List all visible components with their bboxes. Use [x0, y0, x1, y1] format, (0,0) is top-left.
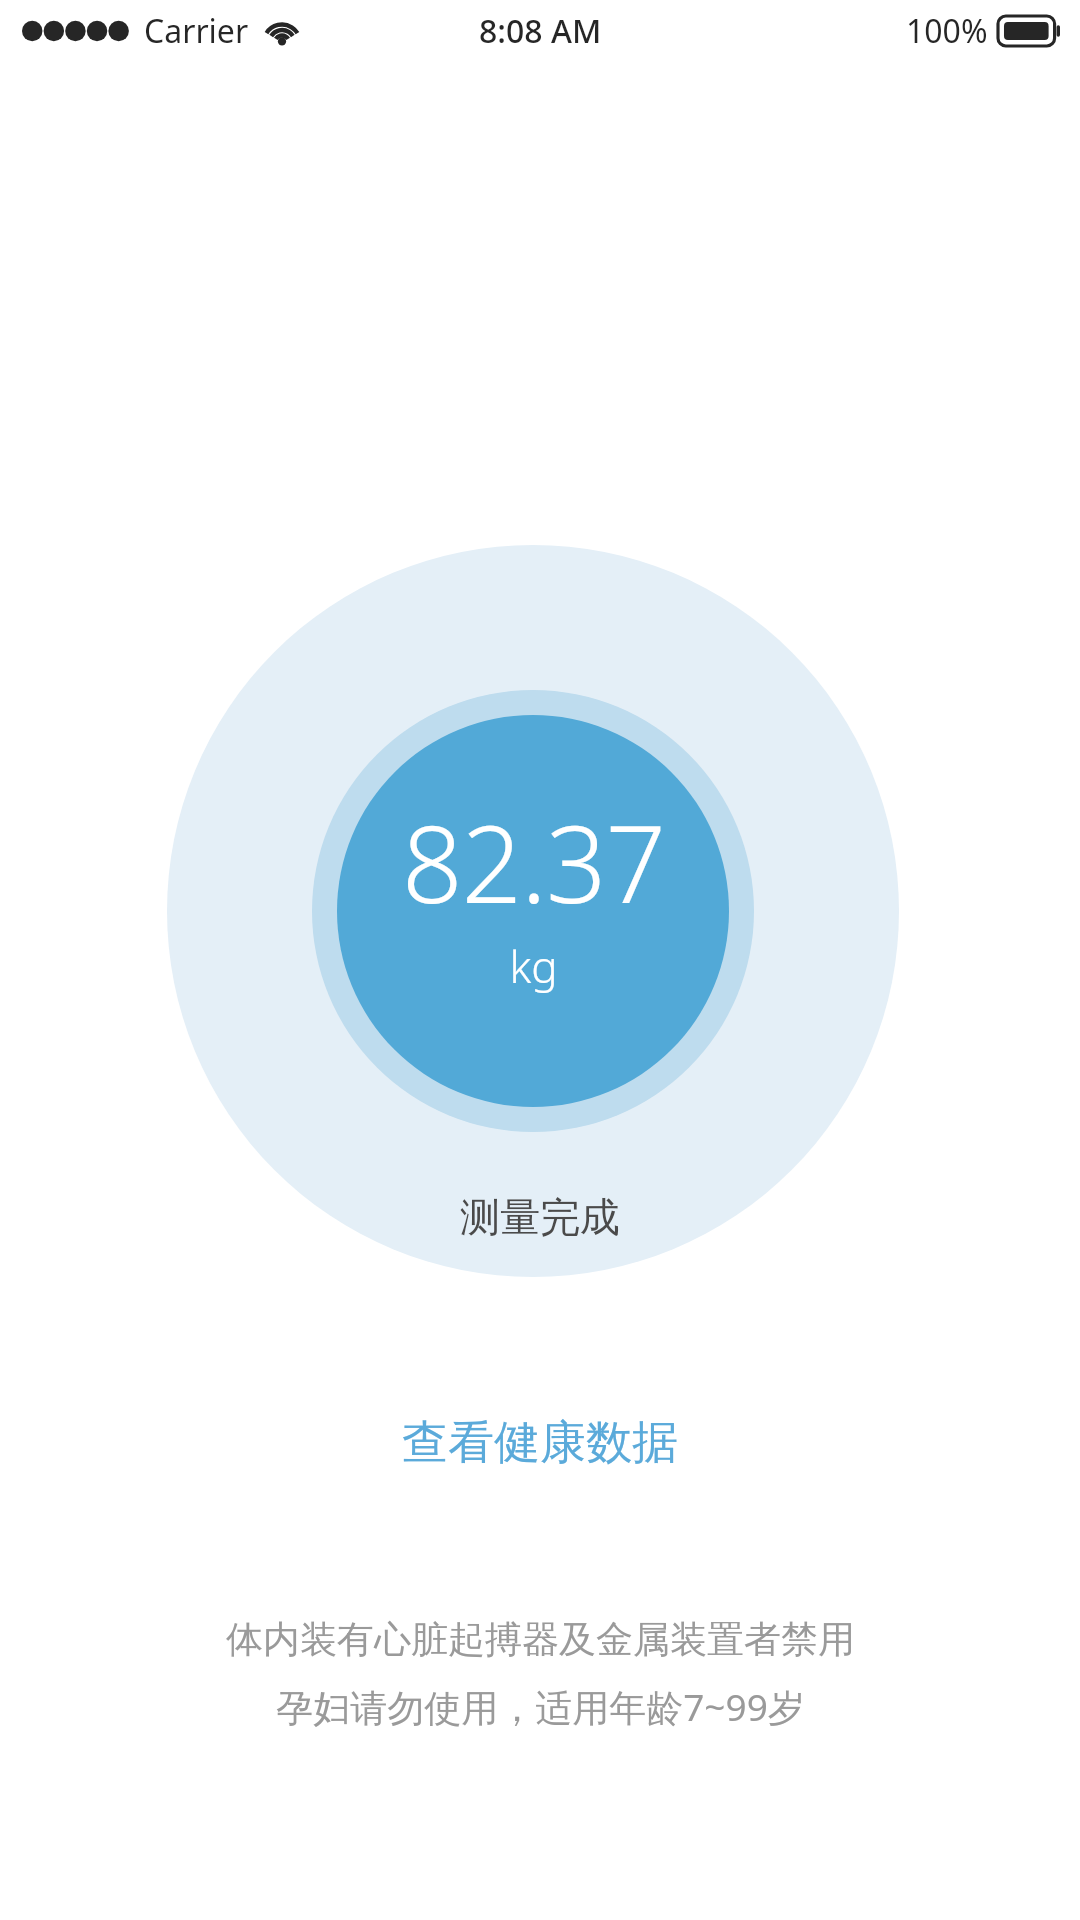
- button[interactable]: 查看健康数据: [374, 1400, 706, 1486]
- button[interactable]: 82.37: [167, 545, 899, 1277]
- staticText: 查看健康数据: [402, 1414, 678, 1472]
- staticText: 8:08 AM: [479, 9, 602, 53]
- staticText: 测量完成: [460, 1192, 620, 1242]
- other: Battery full: [998, 16, 1060, 46]
- staticText: 体内装有心脏起搏器及金属装置者禁用: [226, 1616, 855, 1663]
- staticText: kg: [509, 936, 558, 996]
- staticText: Carrier: [144, 9, 249, 53]
- staticText: 82.37: [402, 790, 665, 934]
- staticText: 孕妇请勿使用，适用年龄7~99岁: [276, 1681, 805, 1732]
- other: Wi-Fi signal: [263, 17, 301, 45]
- staticText: 100%: [906, 9, 988, 53]
